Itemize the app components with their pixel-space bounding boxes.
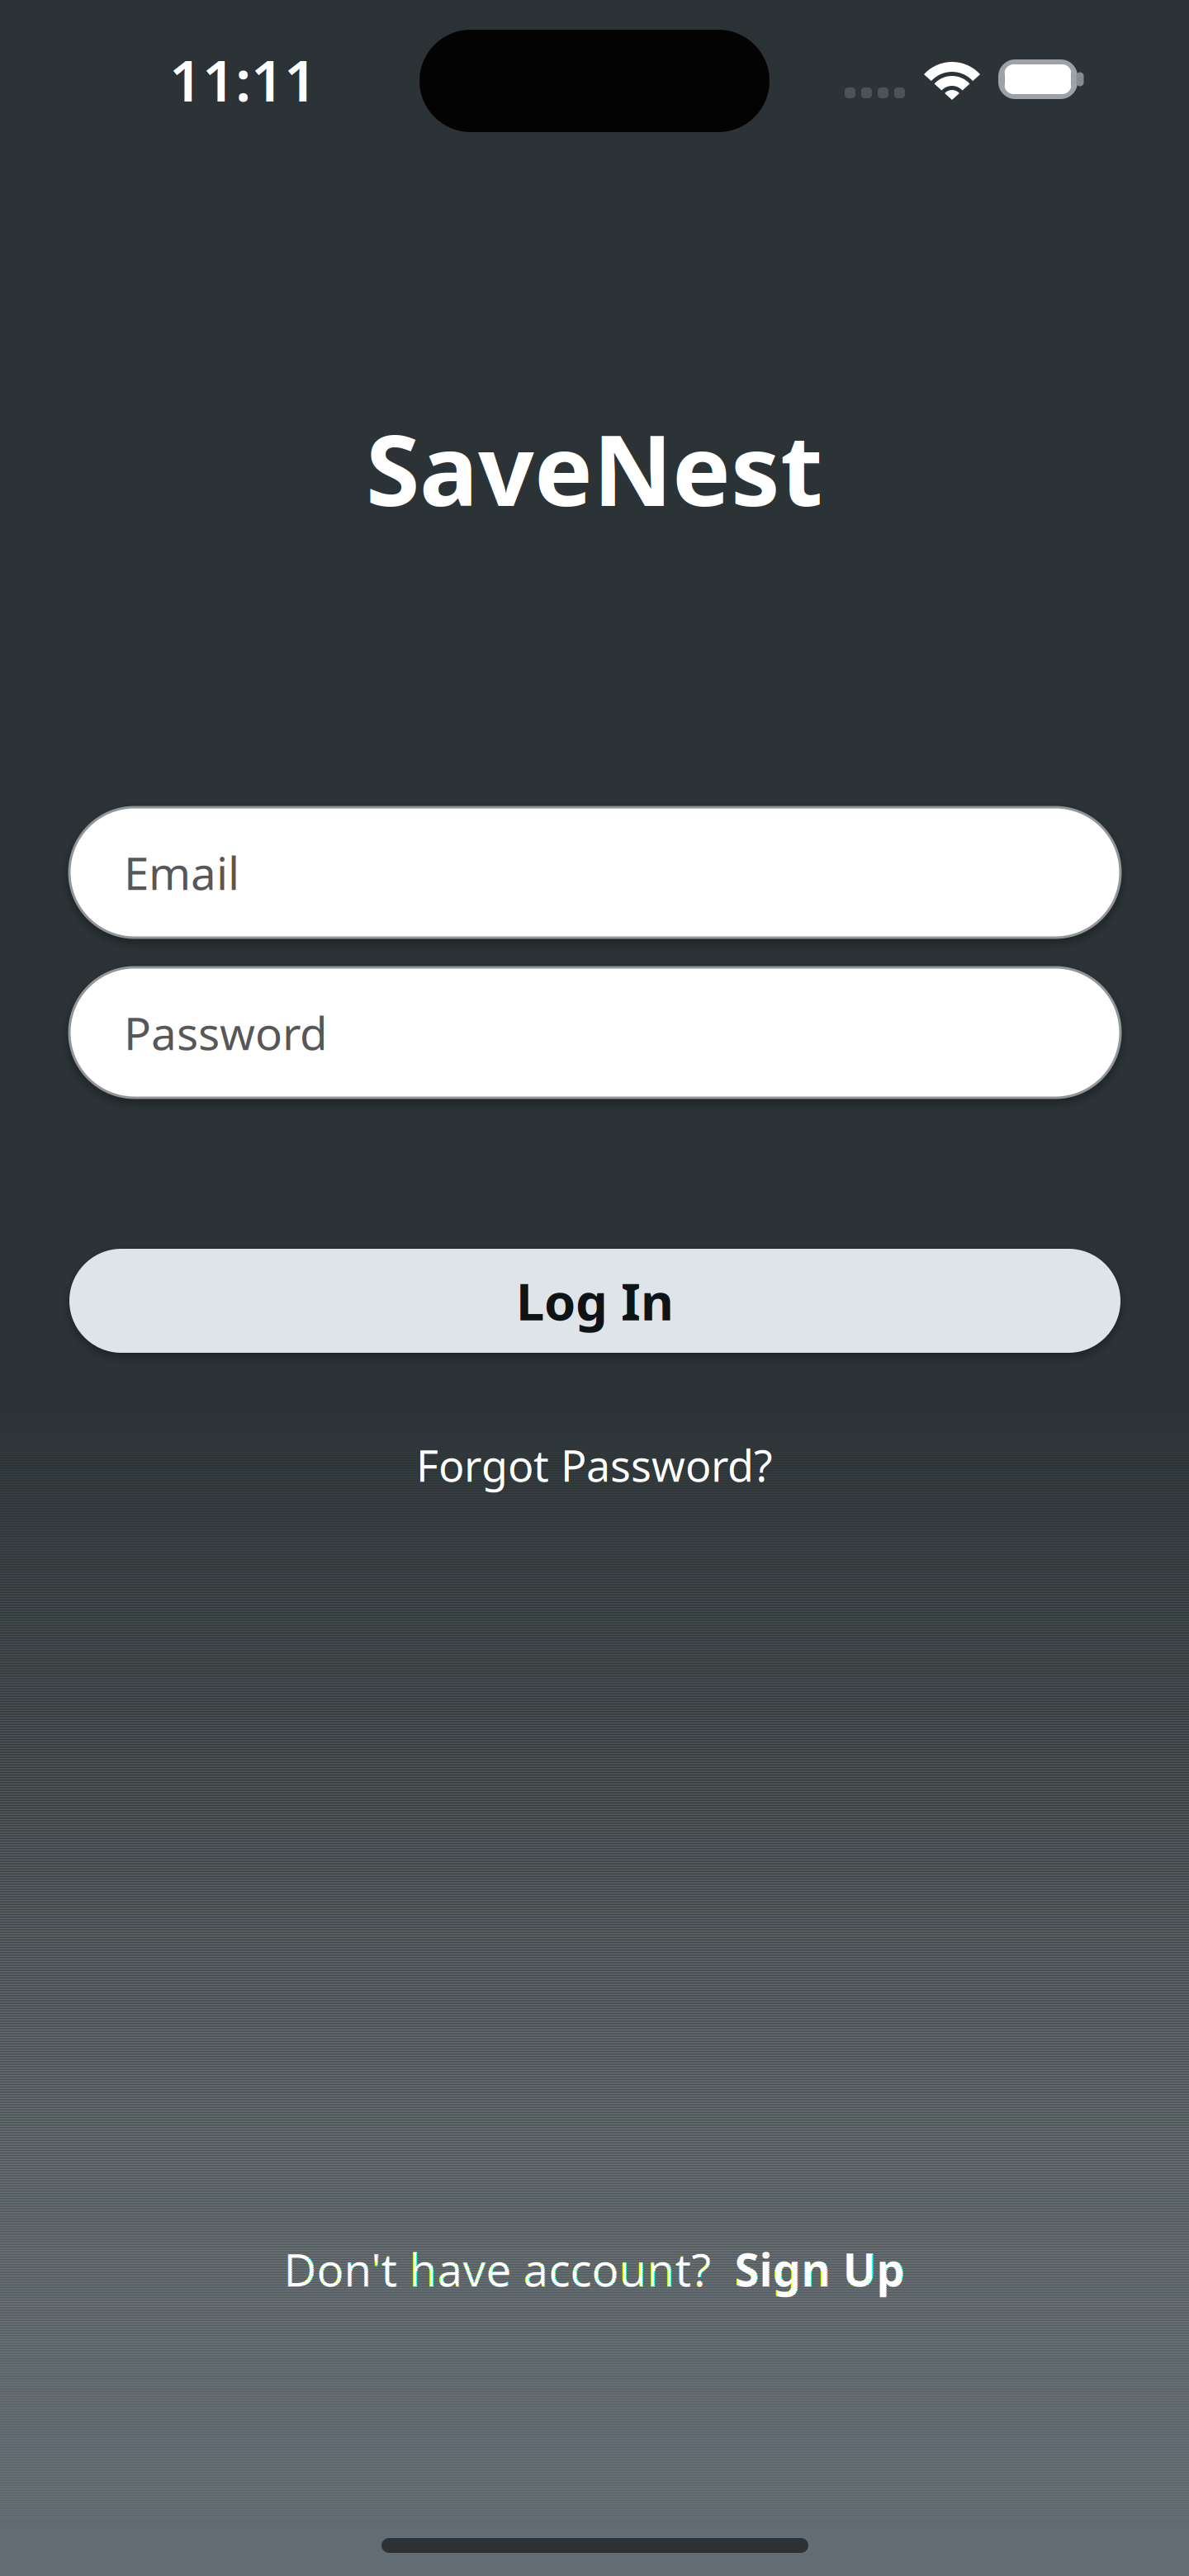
- staticText: SaveNest: [366, 403, 823, 533]
- button[interactable]: Log In: [69, 1249, 1120, 1353]
- button[interactable]: Forgot Password?: [406, 1429, 783, 1501]
- staticText: Don't have account?: [284, 2239, 711, 2299]
- staticText: Sign Up: [734, 2239, 905, 2299]
- button[interactable]: Sign Up: [734, 2239, 905, 2299]
- staticText: 11:11: [169, 41, 317, 117]
- staticText: Forgot Password?: [416, 1437, 773, 1494]
- staticText: Password: [124, 1003, 328, 1063]
- staticText: Log In: [516, 1267, 674, 1334]
- staticText: Email: [124, 842, 239, 902]
- button[interactable]: Password: [69, 967, 1120, 1098]
- button[interactable]: Email: [69, 807, 1120, 938]
